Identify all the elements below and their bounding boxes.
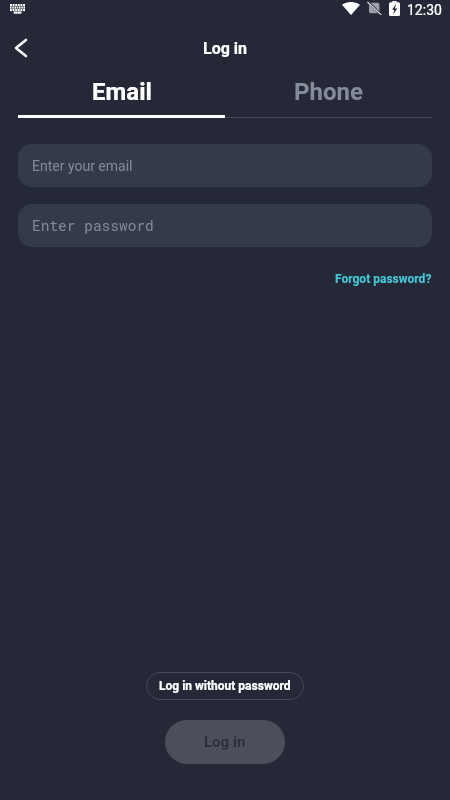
staticText: Forgot password?	[335, 272, 432, 286]
button[interactable]: Enter password	[18, 204, 432, 247]
staticText: Enter your email	[32, 158, 133, 174]
button[interactable]: Back	[0, 26, 44, 70]
button[interactable]: Log in	[165, 720, 285, 764]
button[interactable]: Forgot password?	[329, 266, 438, 292]
staticText: Log in	[203, 39, 248, 58]
button[interactable]: Phone	[225, 70, 432, 114]
button[interactable]: Email	[18, 70, 225, 114]
staticText: Log in without password	[159, 679, 291, 693]
staticText: 12:30	[407, 2, 442, 18]
button[interactable]: Enter your email	[18, 144, 432, 187]
button[interactable]: Log in without password	[146, 672, 304, 700]
staticText: Log in	[204, 733, 246, 751]
staticText: Email	[92, 78, 152, 106]
staticText: Enter password	[32, 216, 154, 235]
staticText: Phone	[294, 78, 363, 106]
